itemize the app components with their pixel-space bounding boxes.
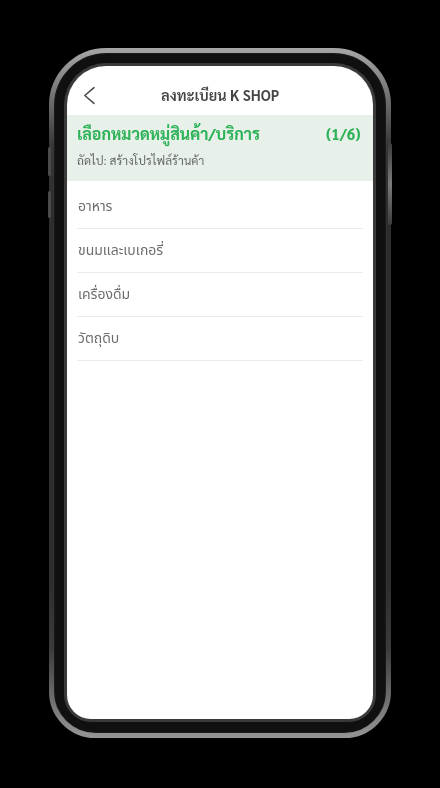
staticText: อาหาร: [78, 196, 113, 217]
button[interactable]: เครื่องดื่ม: [67, 273, 373, 316]
staticText: ขนมและเบเกอรี่: [78, 240, 164, 261]
staticText: ลงทะเบียน K SHOP: [161, 86, 280, 105]
staticText: วัตถุดิบ: [78, 328, 120, 349]
staticText: เครื่องดื่ม: [78, 284, 131, 305]
staticText: ถัดไป: สร้างโปรไฟล์ร้านค้า: [77, 152, 205, 168]
button[interactable]: ขนมและเบเกอรี่: [67, 229, 373, 272]
button[interactable]: อาหาร: [67, 185, 373, 228]
staticText: (1/6): [326, 124, 361, 143]
button[interactable]: วัตถุดิบ: [67, 317, 373, 360]
staticText: เลือกหมวดหมู่สินค้า/บริการ: [77, 123, 260, 144]
button[interactable]: [77, 83, 101, 107]
